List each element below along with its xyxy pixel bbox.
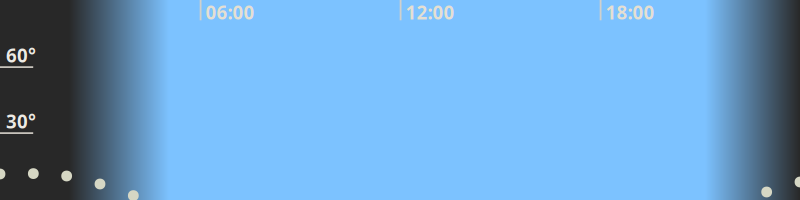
staticText: 60°	[6, 43, 36, 68]
staticText: 06:00	[205, 0, 254, 25]
staticText: 30°	[6, 109, 36, 134]
staticText: 18:00	[605, 0, 654, 25]
staticText: 12:00	[405, 0, 454, 25]
